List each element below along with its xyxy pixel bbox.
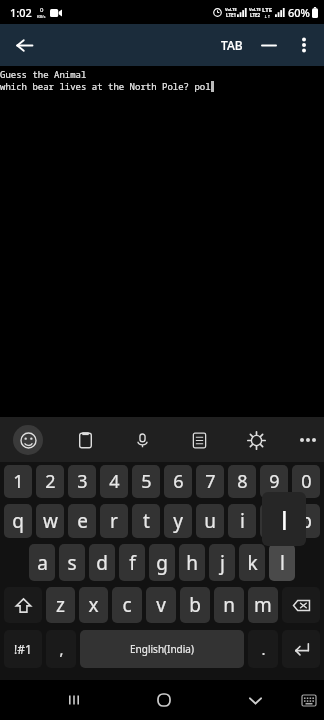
staticText: y xyxy=(173,508,183,534)
staticText: VoLTE xyxy=(225,7,237,12)
staticText: t xyxy=(143,508,150,534)
button[interactable]: Enter xyxy=(282,630,320,668)
staticText: z xyxy=(56,592,65,618)
button[interactable]: w xyxy=(36,504,64,538)
staticText: ↓↑ xyxy=(264,14,271,19)
button[interactable]: Text extract xyxy=(184,425,214,455)
staticText: h xyxy=(186,550,198,576)
button[interactable]: 8 xyxy=(228,465,256,498)
button[interactable]: f xyxy=(119,544,145,581)
staticText: u xyxy=(204,508,216,534)
staticText: LTE1 xyxy=(226,12,237,18)
staticText: 3 xyxy=(77,469,88,494)
staticText: !#1 xyxy=(14,641,32,657)
button[interactable]: Shift xyxy=(4,587,42,623)
staticText: 0 xyxy=(301,469,312,494)
staticText: v xyxy=(156,592,166,618)
button[interactable]: s xyxy=(59,544,85,581)
button[interactable]: 3 xyxy=(68,465,96,498)
button[interactable]: Minimize xyxy=(251,27,287,63)
staticText: j xyxy=(220,550,225,576)
staticText: r xyxy=(110,508,118,534)
button[interactable]: x xyxy=(79,587,108,623)
staticText: LTE2 xyxy=(250,12,261,18)
button[interactable]: 6 xyxy=(164,465,192,498)
button[interactable]: . xyxy=(248,630,278,668)
button[interactable]: r xyxy=(100,504,128,538)
staticText: w xyxy=(43,508,58,534)
button[interactable]: !#1 xyxy=(4,630,42,668)
button[interactable]: d xyxy=(89,544,115,581)
button[interactable]: e xyxy=(68,504,96,538)
staticText: p xyxy=(300,508,312,534)
button[interactable]: n xyxy=(214,587,244,623)
button[interactable]: Change keyboard xyxy=(294,684,324,716)
staticText: f xyxy=(129,550,136,576)
staticText: English(India) xyxy=(130,642,194,656)
staticText: e xyxy=(77,508,88,534)
button[interactable]: m xyxy=(248,587,278,623)
staticText: VoLTE xyxy=(249,7,261,12)
button[interactable]: Hide keyboard xyxy=(238,683,272,717)
button[interactable]: i xyxy=(228,504,256,538)
button[interactable]: u xyxy=(196,504,224,538)
button[interactable]: j xyxy=(209,544,235,581)
button[interactable]: q xyxy=(4,504,32,538)
staticText: 7 xyxy=(205,469,216,494)
button[interactable]: , xyxy=(46,630,76,668)
button[interactable]: k xyxy=(239,544,265,581)
staticText: 0 xyxy=(40,6,44,14)
staticText: l xyxy=(281,502,288,537)
button[interactable]: 4 xyxy=(100,465,128,498)
staticText: g xyxy=(156,550,168,576)
button[interactable]: Clipboard xyxy=(70,425,100,455)
staticText: 8 xyxy=(237,469,248,494)
button[interactable]: 1 xyxy=(4,465,32,498)
button[interactable]: c xyxy=(112,587,142,623)
button[interactable]: a xyxy=(29,544,55,581)
staticText: KB/s xyxy=(37,14,46,19)
button[interactable]: Backspace xyxy=(282,587,320,623)
staticText: Guess the Animal xyxy=(0,68,87,80)
button[interactable]: Back xyxy=(6,27,42,63)
button[interactable]: b xyxy=(180,587,210,623)
button[interactable]: English(India) xyxy=(80,630,244,668)
staticText: 6 xyxy=(173,469,184,494)
button[interactable]: Home xyxy=(146,682,182,718)
staticText: m xyxy=(254,592,272,618)
staticText: l xyxy=(280,550,285,576)
button[interactable]: More options xyxy=(287,28,321,62)
staticText: 2 xyxy=(45,469,56,494)
staticText: n xyxy=(223,592,235,618)
staticText: a xyxy=(37,550,48,576)
staticText: TAB xyxy=(221,37,243,53)
staticText: LTE xyxy=(262,6,273,14)
button[interactable]: More xyxy=(293,425,323,455)
button[interactable]: z xyxy=(46,587,75,623)
staticText: c xyxy=(122,592,132,618)
button[interactable]: 9 xyxy=(260,465,288,498)
button[interactable]: l xyxy=(269,544,295,581)
button[interactable]: o xyxy=(260,504,288,538)
button[interactable]: v xyxy=(146,587,176,623)
button[interactable]: t xyxy=(132,504,160,538)
button[interactable]: p xyxy=(292,504,320,538)
button[interactable]: Settings xyxy=(241,425,271,455)
button[interactable]: 2 xyxy=(36,465,64,498)
staticText: 4 xyxy=(109,469,120,494)
staticText: x xyxy=(88,592,99,618)
button[interactable]: Recents xyxy=(56,682,92,718)
button[interactable]: g xyxy=(149,544,175,581)
button[interactable]: 0 xyxy=(292,465,320,498)
button[interactable]: Voice input xyxy=(127,425,157,455)
button[interactable]: 7 xyxy=(196,465,224,498)
button[interactable]: h xyxy=(179,544,205,581)
button[interactable]: TAB xyxy=(213,25,251,65)
staticText: 1:02 xyxy=(10,5,32,20)
button[interactable]: Emoji xyxy=(13,425,43,455)
button[interactable]: y xyxy=(164,504,192,538)
button[interactable]: 5 xyxy=(132,465,160,498)
staticText: b xyxy=(189,592,201,618)
staticText: , xyxy=(59,639,64,659)
